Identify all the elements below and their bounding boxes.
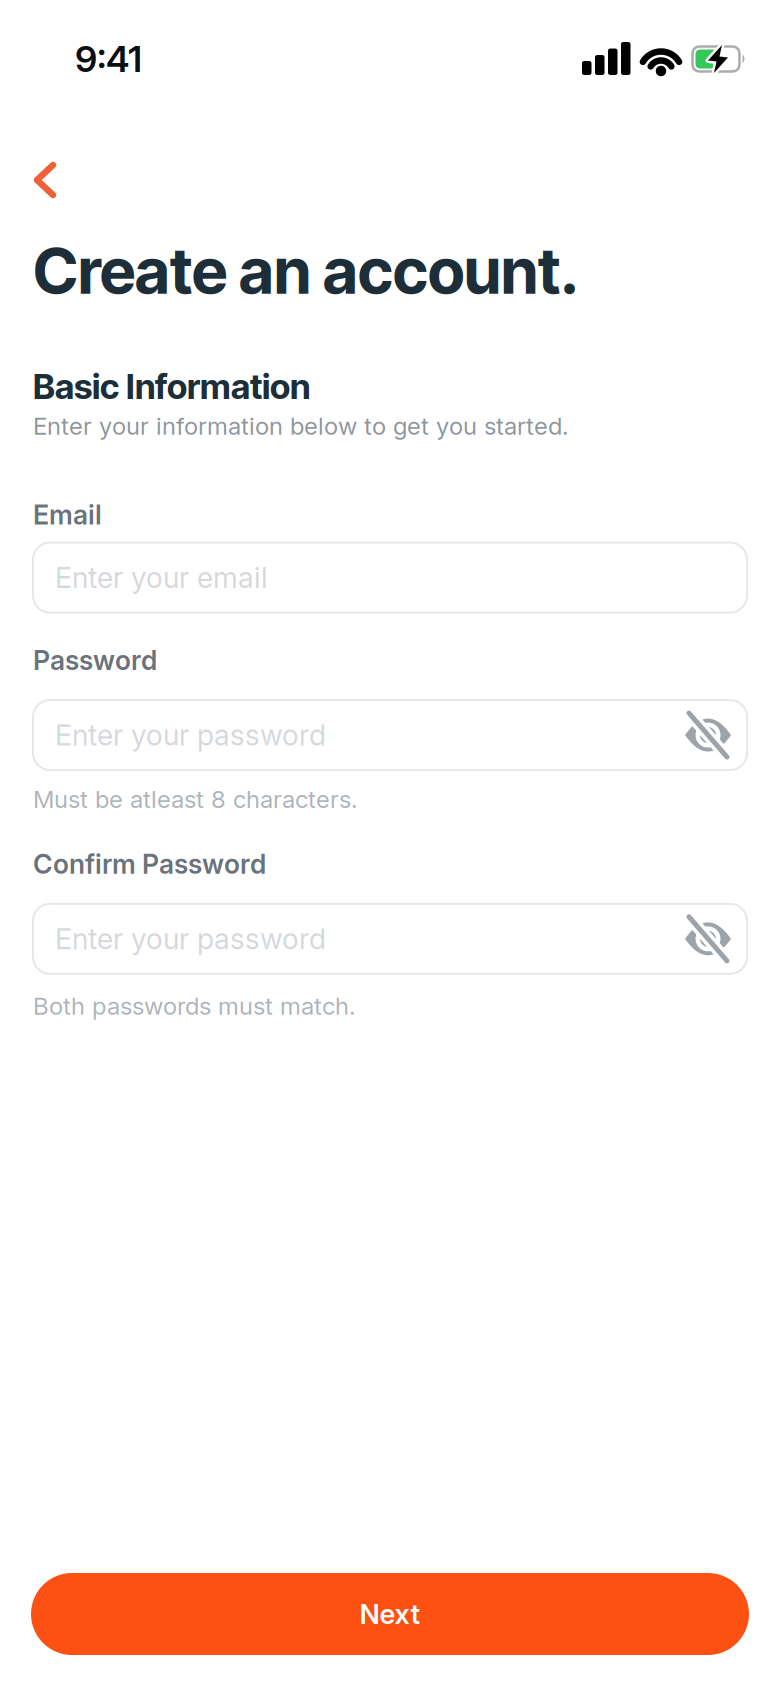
staticText: Enter your password	[55, 718, 326, 752]
staticText: Confirm Password	[33, 848, 266, 880]
staticText: Enter your information below to get you …	[33, 412, 569, 440]
button[interactable]: Enter your password	[33, 700, 747, 770]
staticText: Basic Information	[33, 366, 310, 407]
staticText: Enter your email	[55, 561, 268, 594]
button[interactable]: Enter your email	[33, 543, 747, 613]
staticText: Enter your password	[55, 922, 326, 956]
button[interactable]: Next	[31, 1573, 749, 1655]
staticText: Email	[33, 499, 102, 531]
staticText: Password	[33, 645, 157, 676]
staticText: Next	[359, 1598, 420, 1630]
staticText: Both passwords must match.	[33, 992, 356, 1020]
staticText: Must be atleast 8 characters.	[33, 785, 358, 813]
button[interactable]: Enter your password	[33, 904, 747, 974]
staticText: Create an account.	[33, 234, 579, 308]
staticText: 9:41	[75, 38, 142, 80]
button[interactable]	[33, 162, 57, 198]
